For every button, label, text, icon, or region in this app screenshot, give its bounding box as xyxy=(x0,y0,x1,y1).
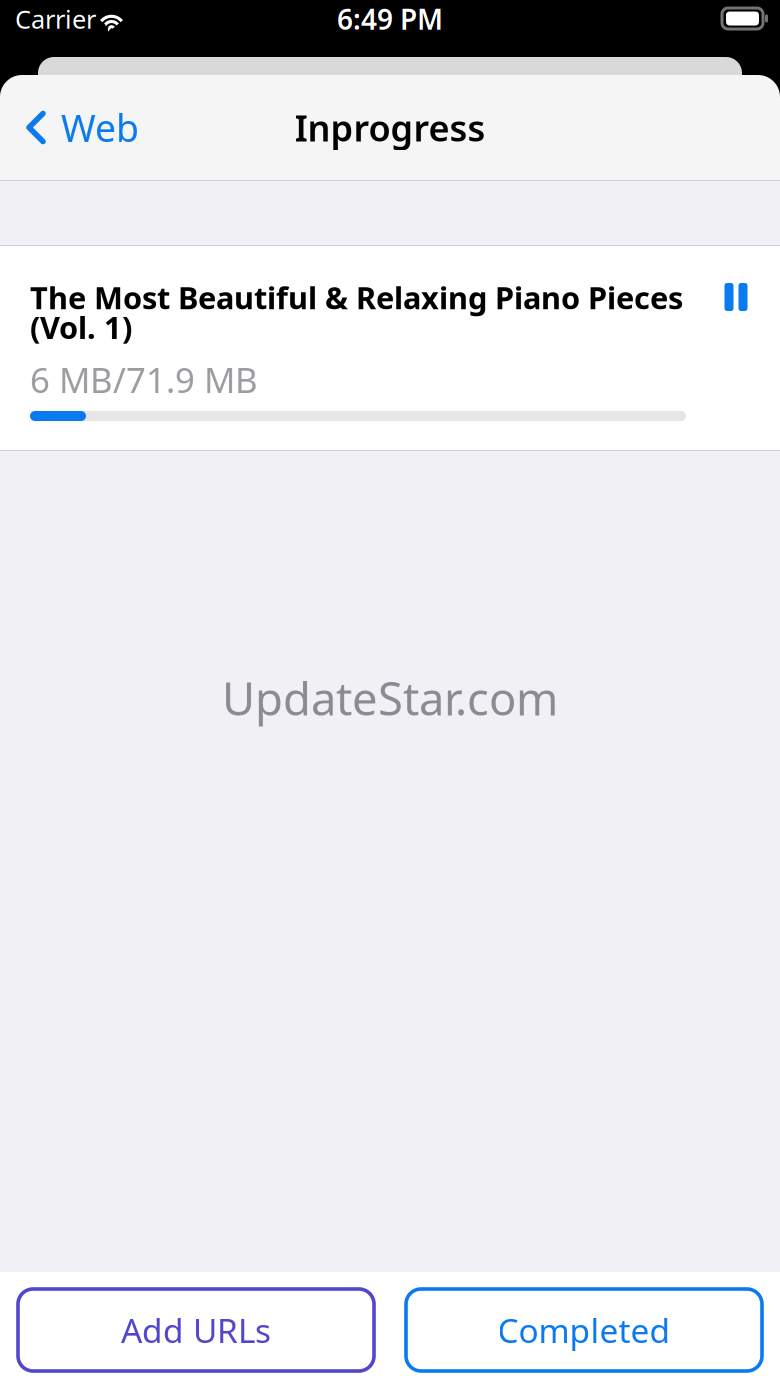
staticText: Inprogress xyxy=(294,104,485,151)
staticText: Completed xyxy=(497,1308,670,1352)
staticText: (Vol. 1) xyxy=(30,307,132,347)
button[interactable]: Pause download xyxy=(698,259,774,335)
button[interactable]: Web xyxy=(0,75,159,180)
staticText: Add URLs xyxy=(121,1308,271,1352)
staticText: The Most Beautiful & Relaxing Piano Piec… xyxy=(30,277,683,318)
button[interactable]: The Most Beautiful & Relaxing Piano Piec… xyxy=(0,246,780,450)
staticText: 6 MB/71.9 MB xyxy=(30,356,258,402)
button[interactable]: Add URLs xyxy=(18,1289,374,1371)
staticText: 6:49 PM xyxy=(337,0,443,38)
staticText: Web xyxy=(61,103,139,152)
staticText: UpdateStar.com xyxy=(222,668,558,728)
staticText: Carrier xyxy=(15,2,96,36)
button[interactable]: Completed xyxy=(406,1289,762,1371)
